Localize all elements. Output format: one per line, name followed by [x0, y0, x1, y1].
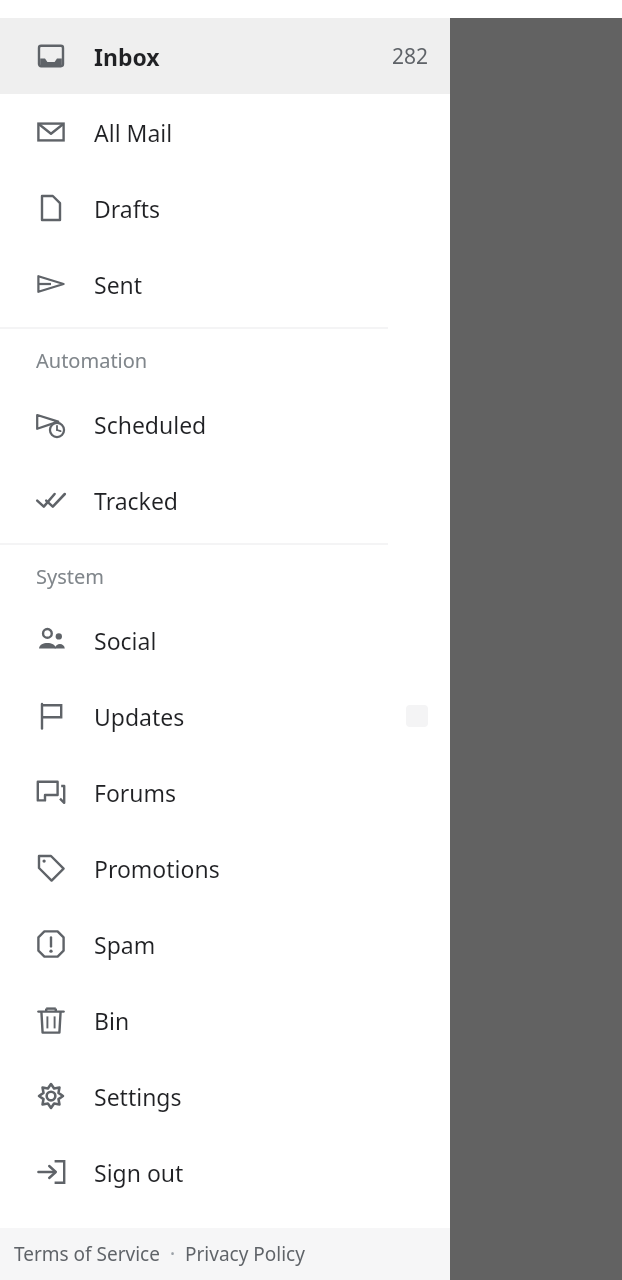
staticText: Terms of Service — [14, 1241, 160, 1267]
button[interactable]: Tracked — [0, 462, 450, 538]
staticText: Tracked — [94, 485, 179, 516]
button[interactable]: Bin — [0, 982, 450, 1058]
button[interactable]: Spam — [0, 906, 450, 982]
staticText: Drafts — [94, 193, 160, 224]
staticText: Promotions — [94, 853, 220, 884]
button[interactable]: Notifications — [102, 44, 150, 92]
button[interactable]: Sign out — [0, 1134, 450, 1210]
staticText: TECHTRACKER.IN — [42, 1238, 130, 1252]
button[interactable]: Inbox — [0, 18, 450, 94]
staticText: 282 — [391, 42, 428, 71]
staticText: · — [160, 1241, 185, 1267]
staticText: Updates — [94, 701, 185, 732]
staticText: Sign out — [94, 1157, 184, 1188]
button[interactable]: All Mail — [0, 94, 450, 170]
staticText: All Mail — [94, 117, 173, 148]
button[interactable]: Scheduled — [0, 386, 450, 462]
button[interactable]: Sent — [0, 246, 450, 322]
staticText: Forums — [94, 777, 177, 808]
button[interactable]: Forums — [0, 754, 450, 830]
button[interactable]: Settings — [0, 1058, 450, 1134]
staticText: Automation — [36, 347, 148, 374]
button[interactable]: Search — [12, 44, 60, 92]
button[interactable]: Privacy Policy — [185, 1241, 305, 1267]
staticText: Inbox — [94, 41, 160, 72]
staticText: Settings — [94, 1081, 182, 1112]
staticText: Bin — [94, 1005, 130, 1036]
staticText: System — [36, 563, 104, 590]
staticText: Sent — [94, 269, 143, 300]
staticText: Social — [94, 625, 157, 656]
button[interactable]: Updates — [0, 678, 450, 754]
button[interactable]: Archive — [100, 136, 140, 176]
button[interactable]: Social — [0, 602, 450, 678]
staticText: Spam — [94, 929, 156, 960]
button[interactable]: Terms of Service — [14, 1241, 160, 1267]
staticText: Scheduled — [94, 409, 207, 440]
staticText: Privacy Policy — [185, 1241, 305, 1267]
button[interactable]: Promotions — [0, 830, 450, 906]
button[interactable]: Drafts — [0, 170, 450, 246]
